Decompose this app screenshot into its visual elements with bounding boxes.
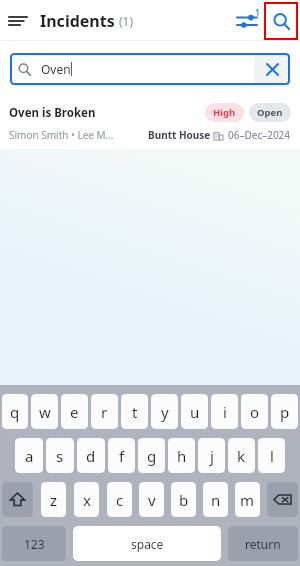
button[interactable]: u — [181, 394, 208, 429]
button[interactable]: k — [228, 438, 255, 473]
staticText: 1 — [255, 6, 261, 18]
button[interactable]: Filter — [232, 6, 262, 36]
staticText: q — [10, 402, 20, 422]
button[interactable]: Search — [264, 2, 298, 40]
staticText: y — [161, 402, 169, 422]
button[interactable]: c — [107, 482, 132, 517]
staticText: r — [101, 402, 108, 422]
staticText: (1) — [119, 13, 134, 29]
button[interactable]: e — [61, 394, 88, 429]
button[interactable]: z — [41, 482, 66, 517]
button[interactable]: Clear search — [254, 53, 290, 85]
button[interactable]: v — [139, 482, 164, 517]
button[interactable]: Oven — [10, 53, 290, 85]
staticText: return — [245, 536, 281, 552]
button[interactable]: f — [108, 438, 135, 473]
button[interactable]: b — [171, 482, 196, 517]
button[interactable]: r — [91, 394, 118, 429]
staticText: High — [213, 106, 236, 119]
button[interactable]: Oven is Broken — [0, 96, 300, 149]
button[interactable]: 123 — [2, 526, 66, 561]
staticText: Oven is Broken — [9, 105, 96, 121]
staticText: v — [148, 490, 156, 510]
staticText: i — [223, 402, 227, 422]
staticText: w — [39, 402, 51, 422]
staticText: Buntt House — [148, 128, 211, 142]
staticText: m — [240, 490, 255, 510]
staticText: a — [25, 446, 34, 466]
staticText: n — [211, 490, 221, 510]
staticText: Open — [257, 106, 283, 119]
staticText: o — [250, 402, 260, 422]
staticText: c — [116, 490, 124, 510]
button[interactable]: w — [31, 394, 58, 429]
staticText: f — [119, 446, 125, 466]
button[interactable]: t — [121, 394, 148, 429]
staticText: 123 — [24, 536, 45, 552]
staticText: u — [190, 402, 200, 422]
button[interactable]: d — [77, 438, 105, 473]
button[interactable]: High — [205, 103, 244, 122]
staticText: x — [83, 490, 91, 510]
staticText: d — [86, 446, 96, 466]
button[interactable]: Shift — [2, 482, 33, 517]
button[interactable]: p — [271, 394, 298, 429]
staticText: e — [70, 402, 79, 422]
button[interactable]: q — [2, 394, 28, 429]
staticText: 06–Dec–2024 — [228, 128, 291, 142]
button[interactable]: Open — [249, 103, 291, 122]
button[interactable]: h — [168, 438, 195, 473]
staticText: Simon Smith • Lee M… — [9, 128, 114, 142]
staticText: l — [270, 446, 274, 466]
staticText: Oven — [41, 61, 71, 77]
button[interactable]: i — [211, 394, 238, 429]
button[interactable]: s — [46, 438, 74, 473]
staticText: b — [179, 490, 189, 510]
button[interactable]: o — [241, 394, 268, 429]
button[interactable]: Menu — [0, 3, 36, 39]
staticText: g — [147, 446, 157, 466]
button[interactable]: l — [258, 438, 285, 473]
staticText: p — [280, 402, 290, 422]
staticText: s — [56, 446, 64, 466]
staticText: space — [131, 536, 164, 552]
button[interactable]: n — [203, 482, 228, 517]
button[interactable]: space — [73, 526, 221, 561]
staticText: Incidents — [40, 10, 115, 32]
button[interactable]: j — [198, 438, 225, 473]
staticText: t — [132, 402, 138, 422]
button[interactable]: y — [151, 394, 178, 429]
button[interactable]: Backspace — [267, 482, 298, 517]
button[interactable]: x — [74, 482, 99, 517]
button[interactable]: m — [235, 482, 260, 517]
staticText: k — [237, 446, 246, 466]
button[interactable]: return — [228, 526, 298, 561]
staticText: z — [50, 490, 58, 510]
staticText: j — [210, 446, 214, 466]
staticText: h — [177, 446, 187, 466]
button[interactable]: g — [138, 438, 165, 473]
button[interactable]: a — [15, 438, 43, 473]
